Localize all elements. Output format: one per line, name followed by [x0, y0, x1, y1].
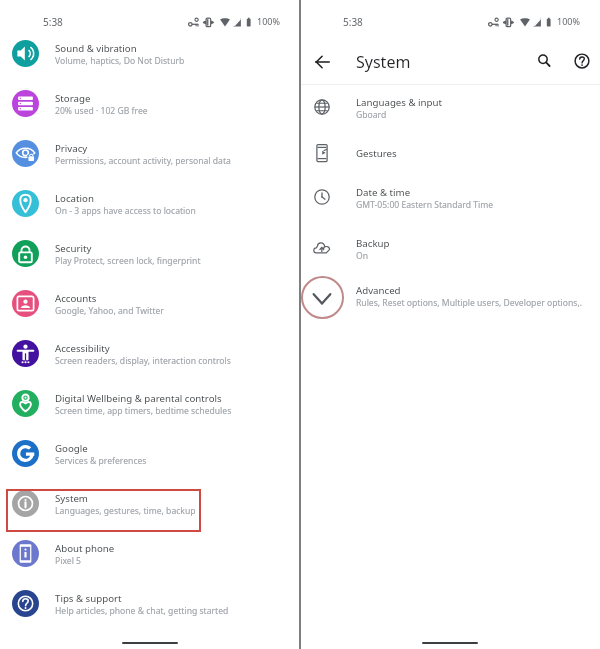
button[interactable]: Date & time — [300, 176, 600, 218]
staticText: Rules, Reset options, Multiple users, De… — [356, 297, 583, 309]
staticText: Gboard — [356, 109, 387, 121]
button[interactable]: About phone — [0, 528, 300, 578]
staticText: About phone — [55, 542, 115, 555]
button[interactable]: Backup — [300, 227, 600, 269]
staticText: GMT-05:00 Eastern Standard Time — [356, 199, 494, 211]
staticText: Play Protect, screen lock, fingerprint — [55, 255, 201, 267]
staticText: Sound & vibration — [55, 42, 137, 55]
staticText: Gestures — [356, 147, 397, 160]
button[interactable]: Sound & vibration — [0, 28, 300, 78]
button[interactable]: Gestures — [300, 132, 600, 174]
staticText: Privacy — [55, 142, 88, 155]
staticText: Date & time — [356, 186, 411, 199]
staticText: Tips & support — [55, 592, 122, 605]
staticText: Digital Wellbeing & parental controls — [55, 392, 222, 405]
staticText: Languages & input — [356, 96, 442, 109]
button[interactable]: Advanced — [300, 274, 600, 316]
staticText: 5:38 — [343, 15, 363, 29]
button[interactable]: Search — [535, 51, 555, 71]
staticText: Advanced — [356, 284, 401, 297]
button[interactable]: Storage — [0, 78, 300, 128]
staticText: Storage — [55, 92, 91, 105]
staticText: System — [55, 492, 88, 505]
staticText: Screen time, app timers, bedtime schedul… — [55, 405, 232, 417]
staticText: Screen readers, display, interaction con… — [55, 355, 231, 367]
button[interactable]: Accessibility — [0, 328, 300, 378]
staticText: Volume, haptics, Do Not Disturb — [55, 55, 185, 67]
staticText: Services & preferences — [55, 455, 147, 467]
staticText: Google, Yahoo, and Twitter — [55, 305, 164, 317]
staticText: On - 3 apps have access to location — [55, 205, 196, 217]
staticText: Accessibility — [55, 342, 110, 355]
button[interactable]: Digital Wellbeing & parental controls — [0, 378, 300, 428]
staticText: Backup — [356, 237, 390, 250]
staticText: Security — [55, 242, 92, 255]
staticText: System — [356, 51, 411, 73]
staticText: Help articles, phone & chat, getting sta… — [55, 605, 229, 617]
button[interactable]: Back — [313, 53, 332, 72]
staticText: 20% used · 102 GB free — [55, 105, 148, 117]
button[interactable]: Google — [0, 428, 300, 478]
button[interactable]: Accounts — [0, 278, 300, 328]
staticText: 100% — [557, 15, 580, 27]
staticText: On — [356, 250, 369, 262]
staticText: Languages, gestures, time, backup — [55, 505, 196, 517]
staticText: Permissions, account activity, personal … — [55, 155, 231, 167]
button[interactable]: Security — [0, 228, 300, 278]
button[interactable]: System — [0, 478, 300, 528]
button[interactable]: Tips & support — [0, 578, 300, 628]
staticText: 100% — [257, 15, 280, 27]
button[interactable]: Location — [0, 178, 300, 228]
button[interactable]: Help — [572, 51, 592, 71]
staticText: Accounts — [55, 292, 97, 305]
staticText: Location — [55, 192, 94, 205]
button[interactable]: Languages & input — [300, 86, 600, 128]
button[interactable]: Privacy — [0, 128, 300, 178]
staticText: Google — [55, 442, 88, 455]
staticText: 5:38 — [43, 15, 63, 29]
staticText: Pixel 5 — [55, 555, 82, 567]
